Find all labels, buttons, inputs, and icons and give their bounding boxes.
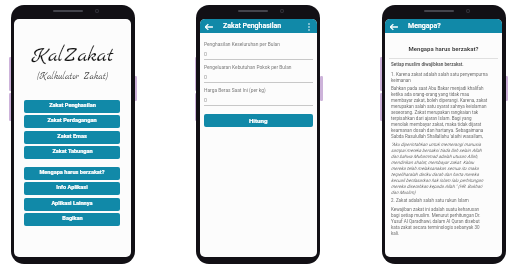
staticText: Zakat Penghasilan (223, 22, 282, 30)
staticText: Mengapa harus berzakat? (385, 45, 502, 52)
staticText: Mengapa? (408, 22, 441, 30)
staticText: 2. Zakat adalah salah satu rukun Islam (391, 198, 469, 203)
staticText: merupakan salah satu syarat sahnya keisl… (391, 104, 487, 109)
staticText: keimanan (391, 78, 411, 83)
staticText: (Kalkulator Zakat) (14, 71, 131, 83)
staticText: Zakat Perdagangan (47, 117, 97, 124)
staticText: membayar zakat, boleh diperangi. Karena,… (391, 98, 488, 103)
staticText: terpeliharalah dariku darah dan harta me… (391, 172, 479, 177)
staticText: terpisahkan dari ajaran Islam. Bagi yang (391, 116, 472, 121)
staticText: 0 (204, 51, 207, 57)
button[interactable]: Zakat Perdagangan (24, 115, 120, 128)
staticText: Info Aplikasi (56, 184, 88, 191)
staticText: ketika ada orang-orang yang tidak mau (391, 92, 470, 97)
staticText: Bagikan (62, 215, 83, 222)
button[interactable]: Back (203, 21, 214, 32)
staticText: Bahkan pada saat Abu Bakar menjadi khali… (391, 86, 484, 91)
button[interactable]: Back (388, 21, 399, 32)
staticText: Pengeluaran Kebutuhan Pokok per Bulan (204, 65, 292, 71)
staticText: mendirikan shalat, membayar zakat. Kalau (391, 160, 474, 165)
button[interactable]: Aplikasi Lainnya (24, 198, 120, 211)
staticText: Harga Beras Saat Ini (per kg) (204, 88, 266, 94)
staticText: bagi setiap muslim. Menurut perhitungan … (391, 213, 481, 218)
staticText: Aplikasi Lainnya (51, 200, 93, 207)
button[interactable]: More options (303, 21, 314, 32)
button[interactable]: Zakat Emas (24, 131, 120, 144)
staticText: Sabda Rasulullah Shallallahu 'alaihi was… (391, 134, 483, 139)
button[interactable]: Hitung (204, 114, 313, 127)
staticText: "Aku diperintahkan untuk memerangi manus… (391, 142, 481, 147)
staticText: seseorang. Zakat merupakan rangkaian tak (391, 110, 479, 115)
staticText: kali. (391, 231, 400, 236)
staticText: Kewajiban zakat ini adalah suatu keharus… (391, 207, 480, 212)
staticText: Mengapa harus berzakat? (39, 169, 105, 176)
staticText: KalZakat (14, 43, 131, 69)
staticText: Zakat Emas (57, 133, 87, 140)
staticText: kata zakat secara terminologis sebanyak … (391, 225, 480, 230)
staticText: 0 (204, 74, 207, 80)
staticText: kecuali berdasarkan hak Islam lalu perhi… (391, 178, 484, 183)
button[interactable]: Zakat Penghasilan (24, 100, 120, 113)
staticText: dan Muslim) (391, 190, 416, 195)
staticText: sampai mereka bersaksi tiada Ilah selain… (391, 148, 482, 153)
staticText: Setiap muslim diwajibkan berzakat. (391, 62, 464, 67)
staticText: Zakat Penghasilan (49, 102, 96, 109)
staticText: Penghasilan Keseluruhan per Bulan (204, 42, 280, 48)
button[interactable]: Info Aplikasi (24, 182, 120, 195)
button[interactable]: Zakat Tabungan (24, 146, 120, 159)
staticText: mereka diserahkan kepada Allah." (HR. Bu… (391, 184, 483, 189)
staticText: menolak membayar zakat, maka tidak dijar… (391, 122, 482, 127)
button[interactable]: Mengapa harus berzakat? (24, 167, 120, 180)
button[interactable]: Bagikan (24, 213, 120, 226)
staticText: Yusuf Al Qaradhawi, dalam Al Quran diseb… (391, 219, 480, 224)
staticText: dan bahwa Muhammad adalah utusan Allah, (391, 154, 478, 159)
staticText: mereka telah melaksanakan semua itu maka (391, 166, 479, 171)
staticText: 1. Karena zakat adalah salah satu penyem… (391, 72, 488, 77)
staticText: Hitung (249, 117, 268, 124)
staticText: keamanan dosah dan hartanya. Sebagaimana (391, 128, 484, 133)
staticText: Zakat Tabungan (52, 148, 93, 155)
staticText: 0 (204, 97, 207, 103)
